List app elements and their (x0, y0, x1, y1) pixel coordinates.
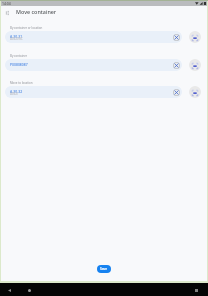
staticText: By container or location (10, 26, 43, 30)
staticText: Move container (16, 8, 57, 15)
button[interactable]: P00808087 (5, 59, 182, 71)
staticText: By container (10, 54, 28, 58)
staticText: A-30-31 (10, 34, 23, 39)
button[interactable]: Clear (172, 33, 180, 41)
button[interactable]: Scan barcode (189, 86, 201, 98)
button[interactable]: Clear (172, 88, 180, 96)
staticText: P00808087 (10, 62, 28, 67)
button[interactable]: Back (5, 286, 14, 295)
staticText: AISLE (10, 92, 18, 96)
button[interactable]: A-30-31 (5, 31, 182, 43)
staticText: Save (100, 267, 108, 271)
button[interactable]: Home (25, 286, 34, 295)
staticText: A-30-32 (10, 89, 23, 94)
staticText: AISLE/RC (10, 37, 23, 41)
button[interactable]: Scan barcode (189, 31, 201, 43)
button[interactable]: Menu (2, 7, 12, 17)
staticText: Move to location (10, 81, 33, 85)
button[interactable]: Clear (172, 61, 180, 69)
staticText: 14:04 (2, 1, 11, 6)
button[interactable]: Save (97, 265, 111, 273)
button[interactable]: A-30-32 (5, 86, 182, 98)
button[interactable]: Scan barcode (189, 59, 201, 71)
button[interactable]: Recents (192, 286, 201, 295)
